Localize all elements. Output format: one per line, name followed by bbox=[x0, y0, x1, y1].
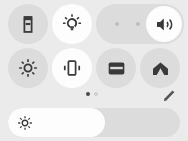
button[interactable]: Flashlight bbox=[8, 4, 48, 44]
button[interactable]: Edit bbox=[158, 84, 180, 106]
button[interactable]: Vibration bbox=[52, 48, 92, 88]
button[interactable]: Brightness slider bbox=[8, 108, 180, 137]
button[interactable]: Wallet bbox=[96, 48, 136, 88]
button[interactable]: Home bbox=[140, 48, 180, 88]
button[interactable]: Brightness bbox=[8, 48, 48, 88]
button[interactable]: Theater mode bbox=[52, 4, 92, 44]
button[interactable]: Sound bbox=[96, 4, 184, 44]
